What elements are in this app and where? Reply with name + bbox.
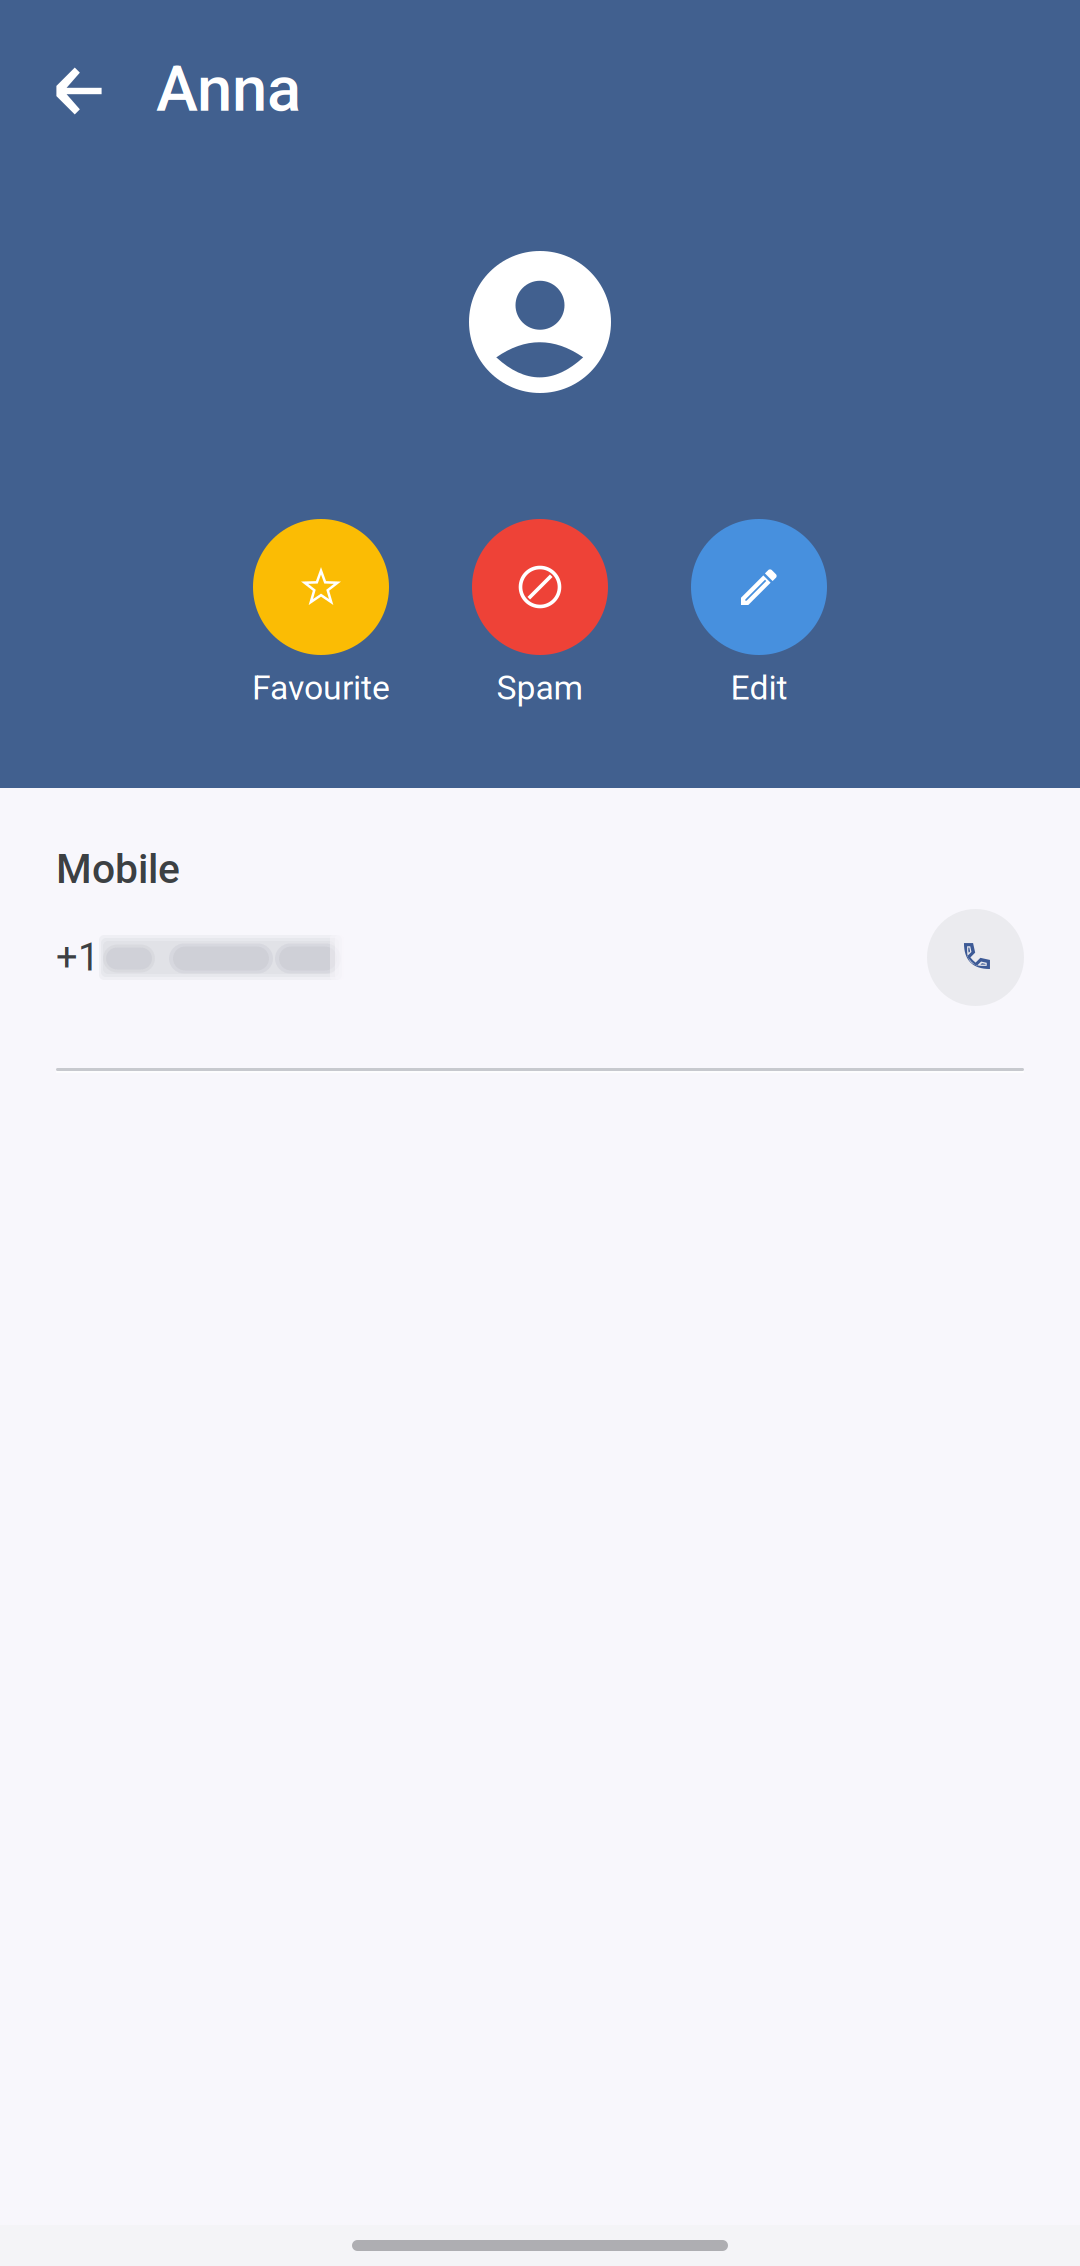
staticText: Mobile bbox=[56, 845, 180, 893]
button[interactable]: +1 bbox=[0, 909, 1080, 1006]
button[interactable]: Spam bbox=[430, 519, 649, 705]
button[interactable]: Back bbox=[0, 67, 156, 111]
staticText: Favourite bbox=[252, 668, 390, 708]
staticText: Anna bbox=[156, 52, 301, 126]
staticText: Edit bbox=[730, 668, 787, 708]
staticText: +1 bbox=[56, 935, 99, 980]
button[interactable]: Favourite bbox=[211, 519, 430, 705]
button[interactable]: Edit bbox=[649, 519, 868, 705]
staticText: Spam bbox=[496, 668, 583, 708]
